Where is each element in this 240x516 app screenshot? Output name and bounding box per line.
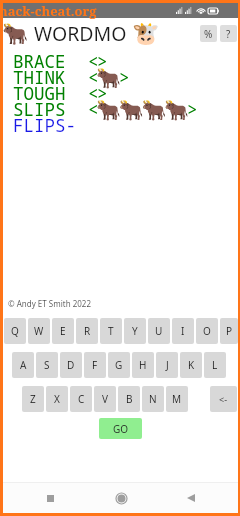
staticText: 🐂 <box>2 22 29 47</box>
button[interactable]: D <box>60 352 82 378</box>
staticText: S <box>44 358 50 372</box>
button[interactable]: R <box>76 318 98 344</box>
staticText: < <box>88 65 99 89</box>
staticText: © Andy ET Smith 2022 <box>8 298 91 309</box>
button[interactable]: N <box>142 386 164 412</box>
staticText: FLIPS- <box>13 113 76 137</box>
staticText: <- <box>219 393 228 405</box>
staticText: I <box>181 324 185 338</box>
button[interactable]: I <box>172 318 194 344</box>
button[interactable]: T <box>100 318 122 344</box>
staticText: Y <box>132 324 138 338</box>
button[interactable]: F <box>84 352 106 378</box>
button[interactable]: H <box>132 352 154 378</box>
staticText: hack-cheat.org <box>0 2 97 20</box>
staticText: O <box>203 324 211 338</box>
staticText: K <box>188 358 195 372</box>
button[interactable]: V <box>94 386 116 412</box>
staticText: W <box>34 324 44 338</box>
staticText: A <box>20 358 27 372</box>
staticText: TOUGH <box>13 81 66 105</box>
button[interactable]: Y <box>124 318 146 344</box>
staticText: B <box>126 392 133 406</box>
button[interactable]: Statistics <box>200 25 217 42</box>
staticText: > <box>119 65 130 89</box>
button[interactable]: GO <box>99 418 142 439</box>
staticText: SLIPS <box>13 97 66 121</box>
staticText: L <box>212 358 218 372</box>
staticText: THINK <box>13 65 66 89</box>
staticText: > <box>187 97 198 121</box>
staticText: V <box>102 392 108 406</box>
button[interactable]: Q <box>4 318 26 344</box>
button[interactable]: A <box>12 352 34 378</box>
button[interactable]: Help <box>220 25 237 42</box>
button[interactable]: Home <box>108 485 134 511</box>
staticText: < <box>88 81 99 105</box>
button[interactable]: G <box>108 352 130 378</box>
staticText: Q <box>11 324 19 338</box>
staticText: U <box>155 324 163 338</box>
staticText: P <box>226 324 233 338</box>
staticText: ? <box>226 27 231 41</box>
button[interactable]: Z <box>22 386 44 412</box>
staticText: Z <box>30 392 36 406</box>
staticText: R <box>84 324 91 338</box>
button[interactable]: E <box>52 318 74 344</box>
staticText: D <box>67 358 75 372</box>
button[interactable]: J <box>156 352 178 378</box>
staticText: BRACE <box>13 49 66 73</box>
staticText: GO <box>113 422 129 436</box>
staticText: 🐮 <box>132 21 160 47</box>
staticText: 🐂🐂🐂🐂 <box>96 98 187 121</box>
staticText: E <box>60 324 66 338</box>
staticText: C <box>78 392 85 406</box>
button[interactable]: C <box>70 386 92 412</box>
staticText: > <box>97 49 108 73</box>
staticText: N <box>149 392 157 406</box>
staticText: 🐂 <box>96 66 119 89</box>
staticText: > <box>97 81 108 105</box>
button[interactable]: P <box>220 318 238 344</box>
button[interactable]: Backspace <box>210 386 237 412</box>
button[interactable]: M <box>166 386 188 412</box>
staticText: M <box>172 392 182 406</box>
button[interactable]: X <box>46 386 68 412</box>
button[interactable]: O <box>196 318 218 344</box>
button[interactable]: Back <box>178 485 204 511</box>
button[interactable]: K <box>180 352 202 378</box>
button[interactable]: U <box>148 318 170 344</box>
staticText: % <box>204 27 213 41</box>
button[interactable]: B <box>118 386 140 412</box>
staticText: < <box>88 97 99 121</box>
button[interactable]: W <box>28 318 50 344</box>
staticText: G <box>115 358 123 372</box>
staticText: T <box>108 324 114 338</box>
button[interactable]: Recent apps <box>37 485 63 511</box>
button[interactable]: L <box>204 352 226 378</box>
staticText: J <box>166 358 169 372</box>
button[interactable]: S <box>36 352 58 378</box>
staticText: X <box>54 392 60 406</box>
staticText: WORDMO <box>34 20 127 47</box>
staticText: H <box>139 358 147 372</box>
staticText: < <box>88 49 99 73</box>
staticText: F <box>92 358 98 372</box>
